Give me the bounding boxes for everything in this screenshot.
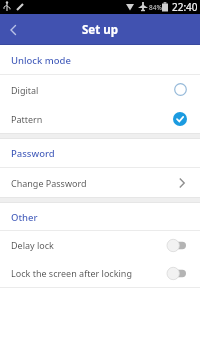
staticText: Pattern (11, 113, 43, 125)
staticText: Other (11, 211, 38, 224)
staticText: 84% (149, 3, 162, 12)
staticText: Set up (82, 22, 118, 38)
staticText: Digital (11, 84, 39, 96)
staticText: Lock the screen after locking (11, 267, 132, 279)
button[interactable]: Lock the screen after locking (0, 259, 200, 287)
button[interactable]: Pattern (0, 104, 200, 133)
staticText: Change Password (11, 177, 87, 189)
button[interactable] (0, 14, 26, 45)
button[interactable]: Change Password (0, 168, 200, 197)
button[interactable]: Digital (0, 75, 200, 104)
staticText: Password (11, 147, 55, 160)
staticText: Delay lock (11, 239, 54, 251)
staticText: Unlock mode (11, 54, 71, 67)
staticText: 22:40 (172, 0, 198, 14)
button[interactable]: Delay lock (0, 231, 200, 259)
